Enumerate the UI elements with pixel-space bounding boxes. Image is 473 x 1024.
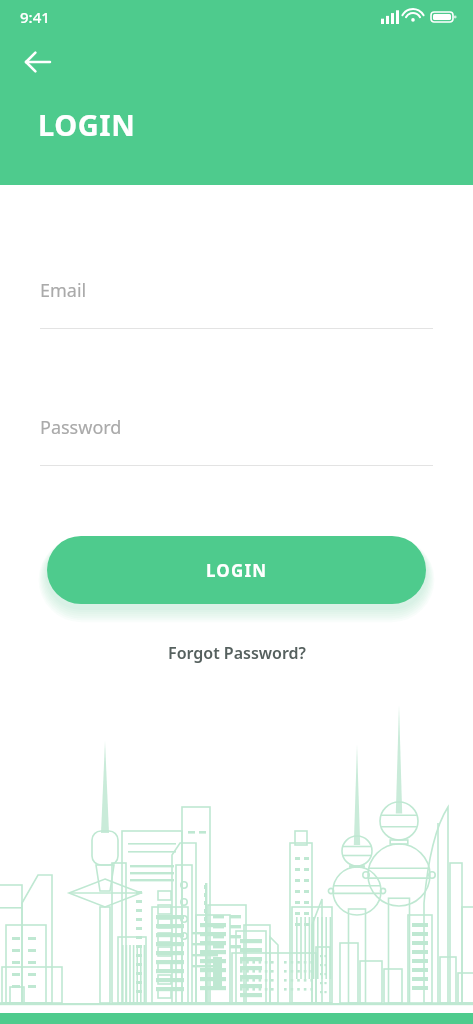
staticText: Password <box>40 415 122 440</box>
button[interactable]: Back <box>16 40 60 84</box>
staticText: 9:41 <box>20 7 50 27</box>
staticText: LOGIN <box>206 559 268 582</box>
staticText: LOGIN <box>38 105 136 144</box>
button[interactable]: Password <box>40 415 433 466</box>
button[interactable]: Forgot Password? <box>154 636 320 670</box>
staticText: Email <box>40 278 87 303</box>
button[interactable]: Email <box>40 278 433 329</box>
button[interactable]: LOGIN <box>47 536 426 604</box>
staticText: Forgot Password? <box>168 642 306 664</box>
